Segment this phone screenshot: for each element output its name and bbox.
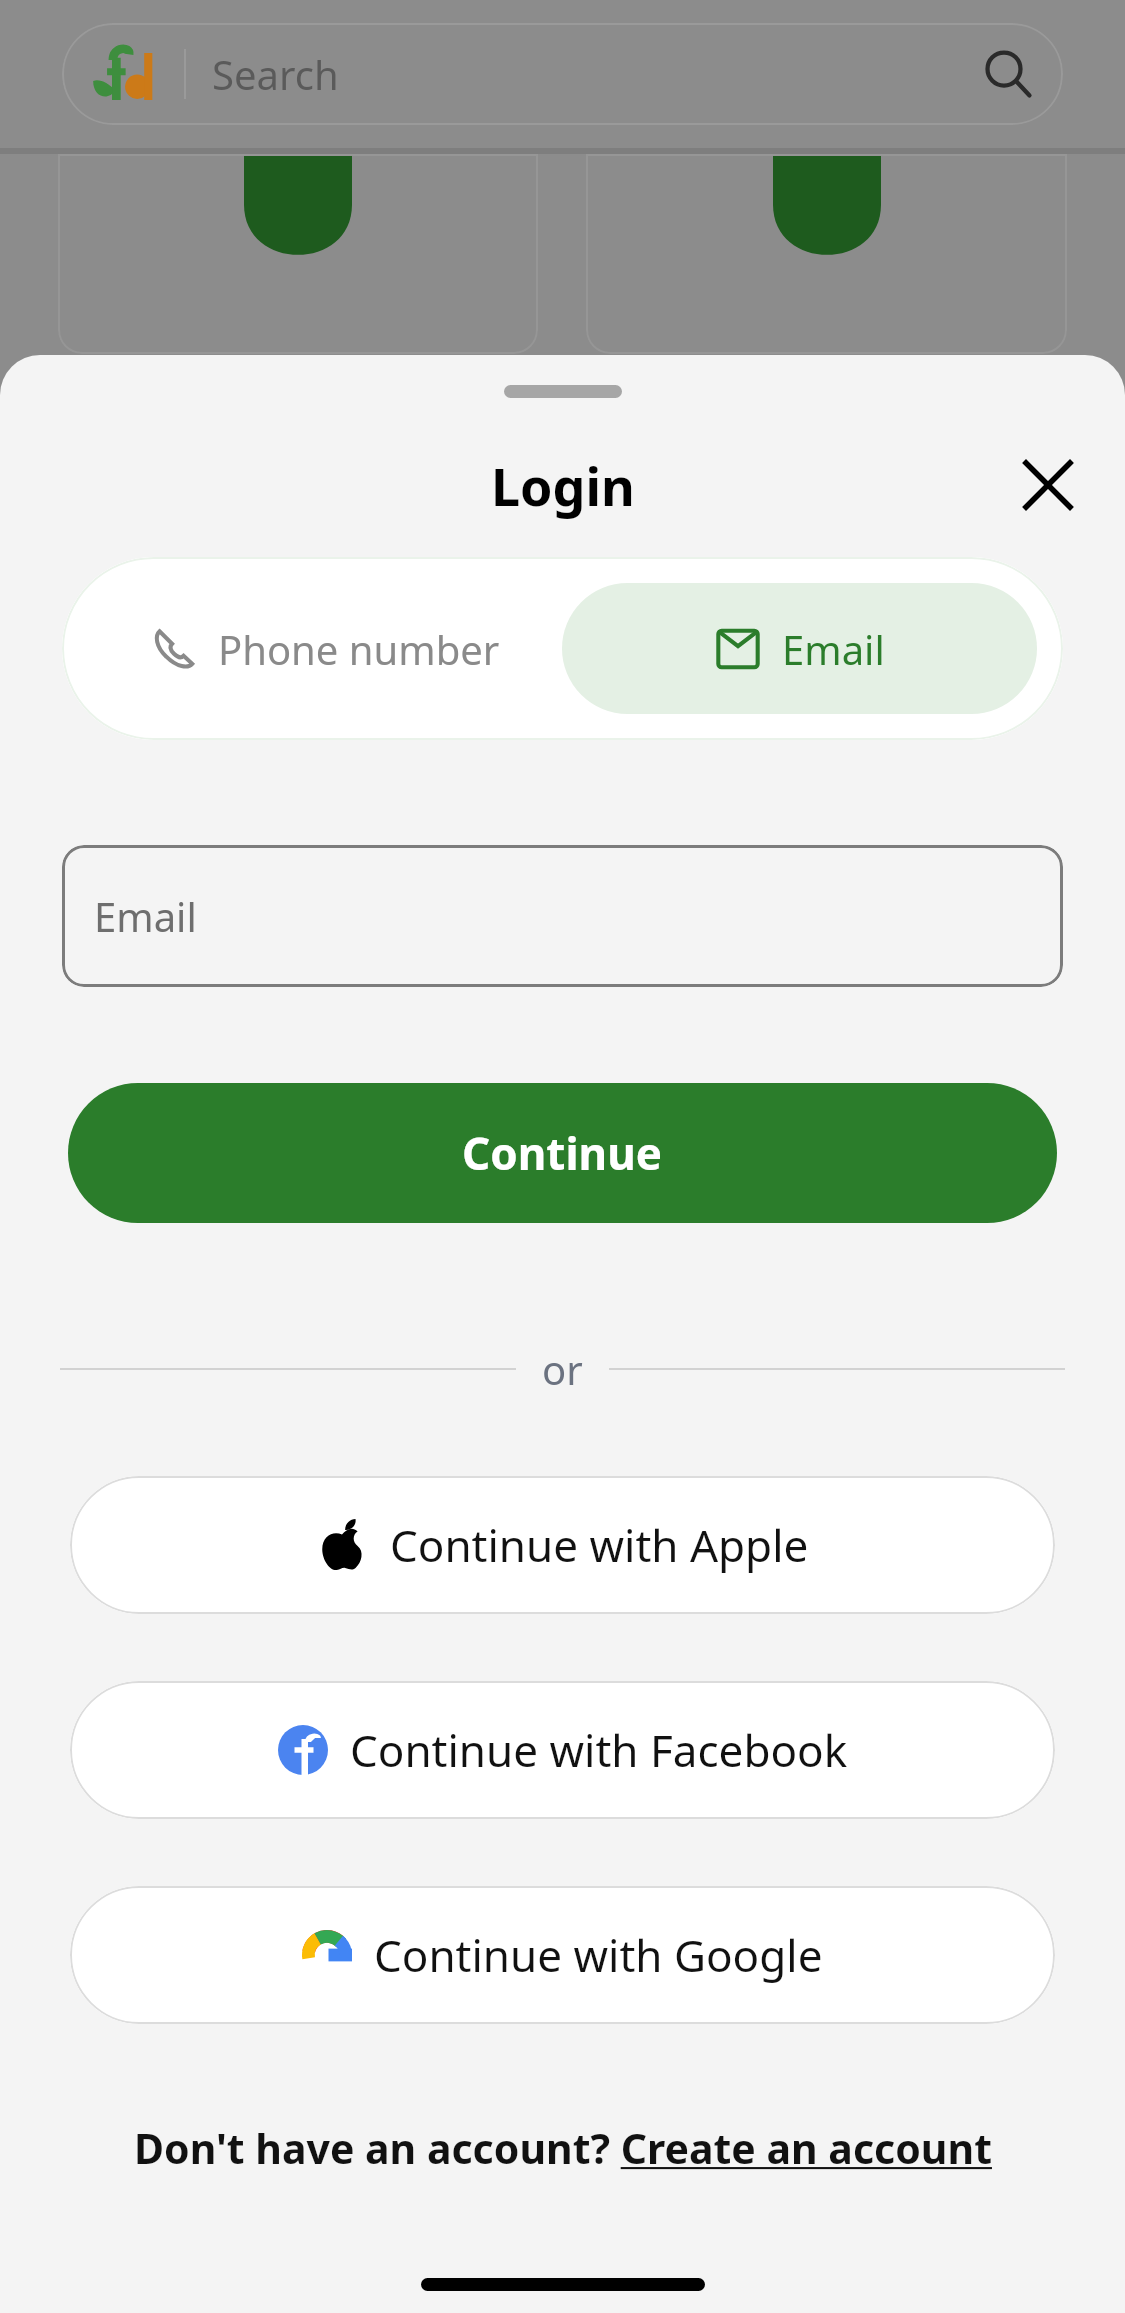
- button[interactable]: Search: [62, 23, 1063, 125]
- button[interactable]: Continue: [68, 1083, 1057, 1223]
- button[interactable]: Phone number: [88, 583, 562, 714]
- staticText: Continue: [462, 1123, 663, 1183]
- staticText: or: [542, 1342, 583, 1396]
- staticText: Search: [212, 47, 339, 101]
- staticText: Don't have an account? Create an account: [134, 2120, 992, 2176]
- staticText: Continue with Google: [374, 1925, 823, 1985]
- button[interactable]: Continue with Google: [70, 1886, 1055, 2024]
- staticText: Continue with Facebook: [350, 1720, 848, 1780]
- button[interactable]: Close: [1017, 454, 1079, 516]
- button[interactable]: Continue with Apple: [70, 1476, 1055, 1614]
- staticText: Login: [491, 450, 635, 521]
- button[interactable]: Continue with Facebook: [70, 1681, 1055, 1819]
- button[interactable]: Email: [562, 583, 1037, 714]
- other: Search: [983, 49, 1033, 99]
- staticText: Continue with Apple: [390, 1515, 809, 1575]
- staticText: Email: [782, 622, 885, 676]
- staticText: Email: [94, 889, 197, 943]
- button[interactable]: Don't have an account? Create an account: [0, 2112, 1125, 2184]
- staticText: Phone number: [218, 622, 500, 676]
- button[interactable]: Email: [62, 845, 1063, 987]
